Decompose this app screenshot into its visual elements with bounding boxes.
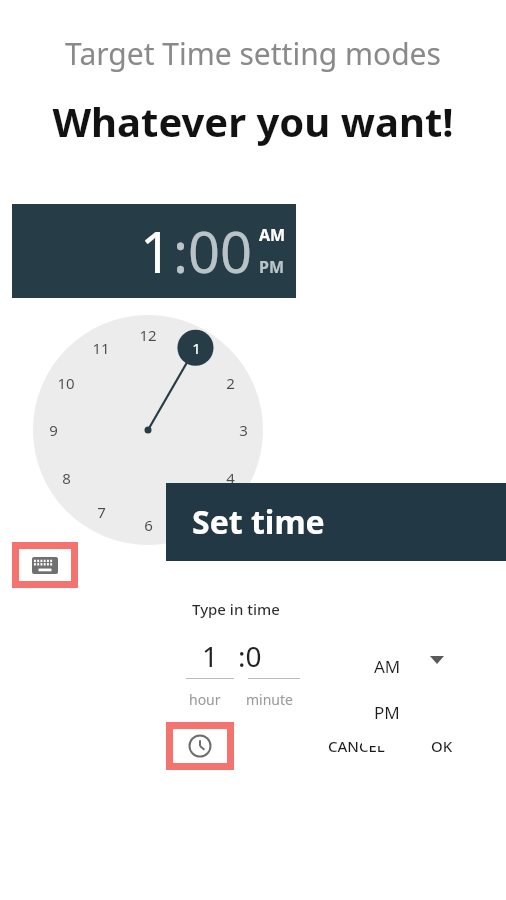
- staticText: 4: [226, 468, 235, 488]
- staticText: 5: [192, 502, 201, 522]
- staticText: 1: [192, 338, 201, 358]
- staticText: 1: [140, 213, 173, 289]
- staticText: 3: [239, 420, 248, 440]
- staticText: CANCEL: [328, 736, 385, 756]
- button[interactable]: Set time: [166, 483, 506, 561]
- button[interactable]: Switch to clock input: [173, 729, 227, 763]
- staticText: minute: [246, 690, 293, 709]
- staticText: :0: [238, 637, 262, 675]
- staticText: Set time: [192, 500, 325, 544]
- button[interactable]: 1: [12, 204, 296, 298]
- staticText: AM: [374, 655, 401, 678]
- staticText: Target Time setting modes: [0, 33, 506, 74]
- staticText: PM: [259, 256, 285, 278]
- staticText: PM: [374, 701, 400, 724]
- staticText: 6: [144, 515, 153, 535]
- button[interactable]: 1: [186, 636, 234, 676]
- staticText: Type in time: [192, 599, 280, 619]
- staticText: Whatever you want!: [0, 94, 506, 148]
- staticText: 9: [49, 420, 58, 440]
- button[interactable]: OK: [425, 730, 459, 762]
- staticText: hour: [189, 690, 221, 709]
- staticText: 11: [92, 338, 110, 358]
- staticText: 2: [226, 373, 235, 393]
- button[interactable]: 1: [33, 315, 263, 545]
- staticText: AM: [259, 224, 286, 246]
- button[interactable]: Switch to text input: [19, 549, 71, 581]
- staticText: :00: [173, 213, 253, 289]
- staticText: OK: [431, 736, 453, 756]
- staticText: 1: [202, 637, 219, 675]
- staticText: 12: [139, 325, 157, 345]
- button[interactable]: AM: [362, 634, 412, 746]
- button[interactable]: Open AM PM selector: [426, 650, 448, 670]
- button[interactable]: :0: [238, 636, 300, 676]
- staticText: 7: [97, 502, 106, 522]
- button[interactable]: CANCEL: [322, 730, 391, 762]
- staticText: 8: [62, 468, 71, 488]
- staticText: 10: [57, 373, 75, 393]
